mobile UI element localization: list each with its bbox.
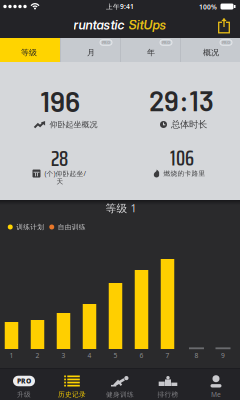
staticText: 仰卧起坐概况 [49, 120, 97, 129]
staticText: 3 [61, 351, 65, 360]
staticText: 等级 1 [105, 201, 136, 215]
staticText: PRO [17, 377, 31, 385]
staticText: 历史记录 [58, 390, 86, 399]
staticText: 7 [165, 351, 169, 360]
staticText: 6 [139, 351, 143, 360]
staticText: 总体时长 [171, 119, 207, 130]
staticText: PRO [102, 40, 110, 45]
staticText: 概况 [203, 48, 219, 57]
staticText: 天 [56, 177, 63, 186]
button[interactable]: 排行榜 [144, 368, 192, 400]
staticText: 训练计划 [16, 223, 44, 231]
staticText: 100% [199, 3, 217, 11]
staticText: 上午9:41 [106, 2, 134, 11]
button[interactable]: 分享 [218, 17, 230, 33]
staticText: 8 [194, 351, 198, 360]
staticText: 排行榜 [157, 390, 178, 399]
staticText: 等级 [21, 48, 37, 57]
staticText: 升级 [17, 390, 31, 399]
staticText: (个)仰卧起坐/ [44, 169, 85, 178]
button[interactable]: 历史记录 [48, 368, 96, 400]
staticText: 5 [113, 351, 117, 360]
staticText: PRO [222, 40, 230, 45]
staticText: 自由训练 [58, 223, 86, 231]
button[interactable]: 月 [60, 38, 120, 62]
staticText: runtastic [73, 17, 124, 33]
button[interactable]: 健身训练 [96, 368, 144, 400]
staticText: 健身训练 [106, 390, 134, 399]
button[interactable]: 年 [120, 38, 180, 62]
staticText: 106 [170, 141, 194, 175]
staticText: PRO [162, 40, 170, 45]
staticText: 2 [35, 351, 39, 360]
staticText: 1 [9, 351, 13, 360]
staticText: 年 [147, 48, 155, 57]
staticText: 196 [40, 83, 80, 118]
staticText: SitUps [128, 17, 165, 33]
staticText: 月 [87, 48, 95, 57]
staticText: 燃烧的卡路里 [163, 169, 205, 178]
button[interactable]: 等级 [0, 38, 60, 62]
button[interactable]: PRO [0, 368, 48, 400]
staticText: Me [211, 390, 221, 399]
staticText: 4 [87, 351, 91, 360]
button[interactable]: Me [192, 368, 240, 400]
staticText: 9 [221, 351, 225, 360]
staticText: 28 [51, 142, 68, 175]
button[interactable]: 概况 [180, 38, 240, 62]
staticText: 29:13 [149, 83, 214, 117]
